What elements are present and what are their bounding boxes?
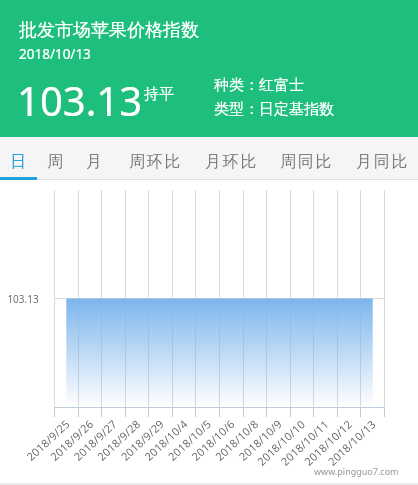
button[interactable]: 周环比 [126, 137, 184, 177]
button[interactable]: 周同比 [277, 137, 335, 177]
button[interactable]: 日 [3, 137, 33, 177]
staticText: 月 [86, 152, 102, 172]
staticText: 月同比 [356, 152, 409, 172]
staticText: 种类：红富士 [214, 76, 304, 95]
staticText: 周环比 [129, 152, 182, 172]
button[interactable]: 月环比 [202, 137, 260, 177]
staticText: 周 [47, 152, 63, 172]
other: 苹果价格指数走势图 [0, 180, 418, 483]
staticText: 月环比 [205, 152, 258, 172]
staticText: 103.13 [17, 73, 143, 127]
button[interactable]: 月同比 [353, 137, 411, 177]
button[interactable]: 周 [40, 137, 70, 177]
staticText: 类型：日定基指数 [214, 100, 334, 119]
staticText: 持平 [144, 85, 174, 104]
button[interactable]: 月 [79, 137, 109, 177]
staticText: 批发市场苹果价格指数 [19, 19, 199, 42]
staticText: 2018/10/13 [19, 45, 91, 63]
staticText: 日 [10, 152, 26, 172]
staticText: 周同比 [280, 152, 333, 172]
